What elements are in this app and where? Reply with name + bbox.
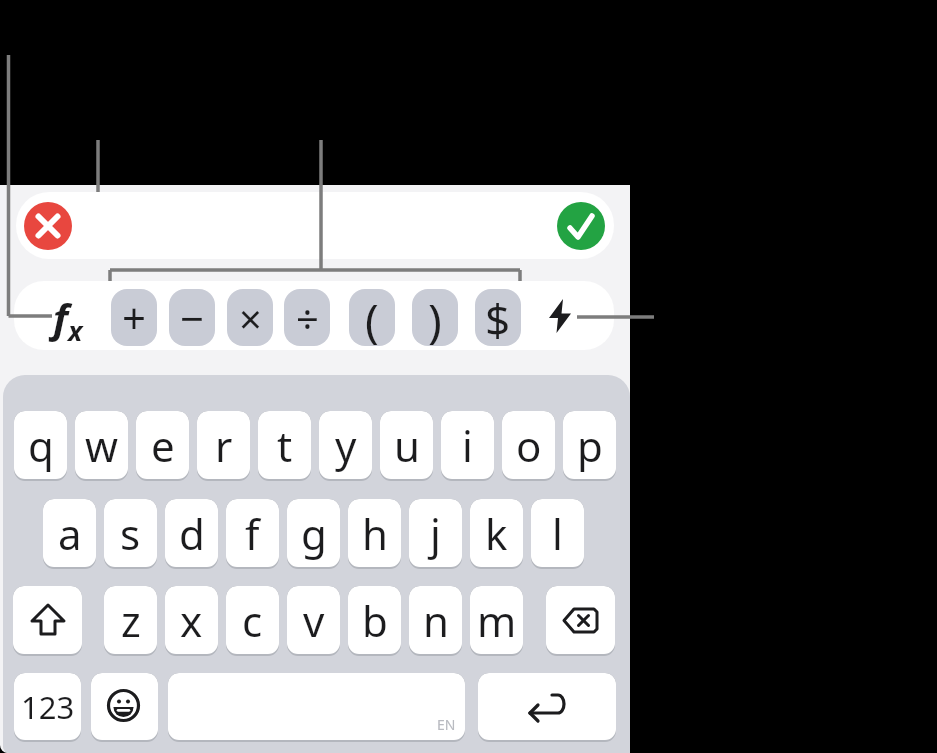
staticText: y (335, 417, 357, 474)
staticText: f (245, 505, 260, 562)
button[interactable]: e (136, 411, 189, 481)
button[interactable]: o (502, 411, 555, 481)
button[interactable]: $ (475, 289, 521, 346)
staticText: p (577, 417, 603, 474)
staticText: n (423, 592, 449, 649)
button[interactable]: l (531, 499, 584, 569)
staticText: j (430, 505, 441, 562)
staticText: x (68, 312, 83, 349)
staticText: l (552, 505, 563, 562)
staticText: ( (365, 289, 379, 346)
button[interactable]: c (226, 586, 279, 656)
button[interactable] (13, 586, 82, 656)
staticText: h (362, 505, 388, 562)
staticText: $ (485, 289, 511, 346)
staticText: w (85, 417, 119, 474)
button[interactable]: f (226, 499, 279, 569)
staticText: 123 (21, 686, 75, 728)
button[interactable]: EN (168, 673, 465, 742)
button[interactable]: v (287, 586, 340, 656)
button[interactable]: s (104, 499, 157, 569)
button[interactable]: u (380, 411, 433, 481)
staticText: u (394, 417, 420, 474)
button[interactable]: t (258, 411, 311, 481)
button[interactable]: p (563, 411, 616, 481)
button[interactable]: n (409, 586, 462, 656)
staticText: b (362, 592, 388, 649)
staticText: x (180, 592, 203, 649)
button[interactable]: q (14, 411, 67, 481)
staticText: m (477, 592, 517, 649)
staticText: v (303, 592, 325, 649)
staticText: + (122, 289, 147, 346)
button[interactable]: w (75, 411, 128, 481)
staticText: t (277, 417, 293, 474)
button[interactable]: r (197, 411, 250, 481)
staticText: f (53, 290, 68, 344)
button[interactable]: m (470, 586, 523, 656)
staticText: r (215, 417, 233, 474)
staticText: q (28, 417, 54, 474)
button[interactable]: j (409, 499, 462, 569)
button[interactable]: 123 (14, 673, 81, 742)
button[interactable]: ) (412, 289, 458, 346)
staticText: c (242, 592, 263, 649)
button[interactable]: − (169, 289, 215, 346)
button[interactable] (91, 673, 158, 742)
button[interactable]: a (43, 499, 96, 569)
staticText: o (516, 417, 542, 474)
staticText: z (121, 592, 141, 649)
button[interactable]: h (348, 499, 401, 569)
button[interactable]: ÷ (284, 289, 330, 346)
staticText: g (301, 505, 327, 562)
button[interactable] (546, 586, 615, 656)
staticText: × (239, 291, 262, 345)
button[interactable]: × (227, 289, 273, 346)
button[interactable] (24, 202, 72, 250)
button[interactable]: z (104, 586, 157, 656)
staticText: − (180, 289, 205, 346)
staticText: k (485, 505, 508, 562)
button[interactable]: f (40, 288, 96, 346)
button[interactable]: ( (349, 289, 395, 346)
button[interactable]: + (111, 289, 157, 346)
staticText: ) (428, 289, 442, 346)
button[interactable]: y (319, 411, 372, 481)
staticText: ÷ (296, 291, 319, 345)
staticText: d (179, 505, 205, 562)
button[interactable] (546, 299, 574, 333)
button[interactable]: b (348, 586, 401, 656)
button[interactable]: i (441, 411, 494, 481)
staticText: s (120, 505, 141, 562)
button[interactable]: g (287, 499, 340, 569)
staticText: i (462, 417, 473, 474)
button[interactable]: k (470, 499, 523, 569)
staticText: EN (437, 715, 456, 734)
button[interactable]: x (165, 586, 218, 656)
staticText: e (151, 417, 175, 474)
button[interactable] (478, 673, 616, 742)
button[interactable]: d (165, 499, 218, 569)
staticText: a (58, 505, 82, 562)
button[interactable] (557, 202, 605, 250)
